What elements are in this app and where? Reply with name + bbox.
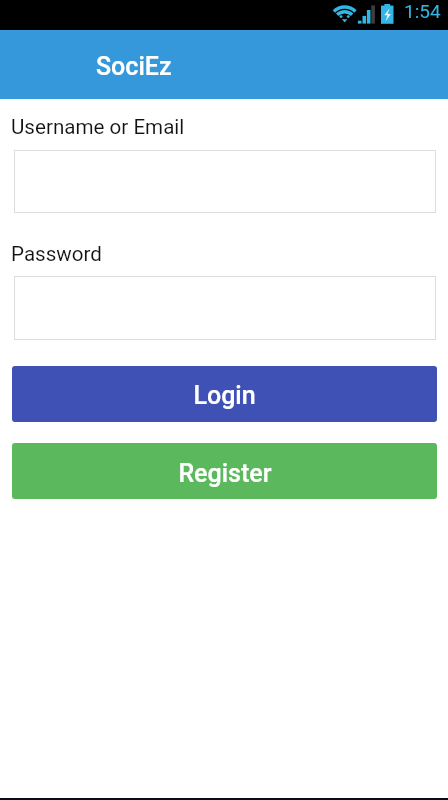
staticText: Username or Email [11, 115, 185, 139]
other: Wi-Fi connected [333, 4, 357, 26]
staticText: SociEz [96, 52, 172, 81]
button[interactable]: Username or Email input field [14, 150, 436, 213]
button[interactable]: Register [12, 443, 437, 499]
other: Mobile signal strength [357, 3, 377, 27]
other: SociEz app bar [0, 30, 448, 99]
staticText: Register [178, 459, 272, 488]
button[interactable]: Password input field [14, 276, 436, 340]
button[interactable]: Login [12, 366, 437, 422]
other: Battery charging [381, 3, 395, 25]
staticText: Login [193, 381, 256, 410]
staticText: Password [11, 242, 102, 266]
staticText: 1:54 [404, 0, 441, 22]
